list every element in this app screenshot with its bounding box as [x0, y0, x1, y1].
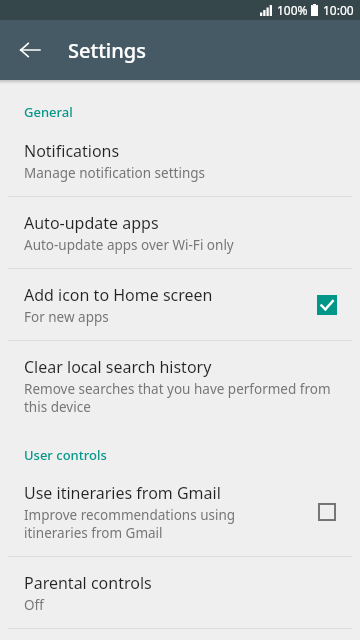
button[interactable]: Unchecked, Use itineraries from Gmail [310, 495, 344, 529]
staticText: Auto-update apps over Wi-Fi only [24, 236, 234, 254]
button[interactable]: Notifications [0, 126, 360, 196]
button[interactable]: Add icon to Home screen [0, 269, 360, 340]
button[interactable]: Checked, Add icon to Home screen [310, 288, 344, 322]
staticText: Notifications [24, 140, 120, 162]
staticText: User controls [24, 446, 107, 464]
staticText: For new apps [24, 308, 109, 326]
staticText: Improve recommendations using itinerarie… [24, 506, 298, 542]
button[interactable]: Back [8, 28, 52, 72]
staticText: Manage notification settings [24, 164, 206, 182]
button[interactable]: Parental controls [0, 557, 360, 628]
staticText: 10:00 [323, 2, 354, 18]
staticText: General [24, 103, 73, 121]
staticText: Use itineraries from Gmail [24, 482, 221, 504]
staticText: Add icon to Home screen [24, 284, 213, 306]
staticText: Off [24, 596, 44, 614]
staticText: Auto-update apps [24, 212, 159, 234]
button[interactable]: Clear local search history [0, 341, 360, 430]
staticText: 100% [277, 2, 308, 18]
staticText: Clear local search history [24, 356, 212, 378]
button[interactable]: Use itineraries from Gmail [0, 469, 360, 556]
staticText: Settings [68, 37, 146, 64]
staticText: Remove searches that you have performed … [24, 380, 344, 416]
staticText: Parental controls [24, 572, 152, 594]
button[interactable]: Auto-update apps [0, 197, 360, 268]
